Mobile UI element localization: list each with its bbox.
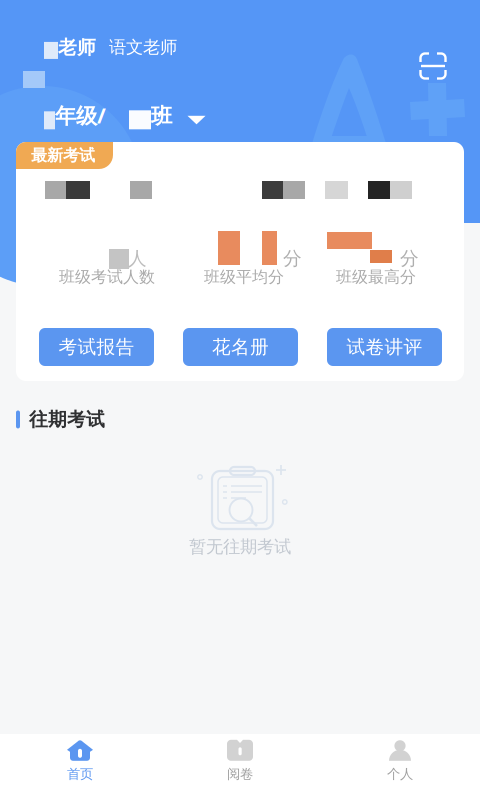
button[interactable]: 阅卷 [160,734,320,800]
button[interactable]: 年级/ [44,96,206,134]
staticText: 往期考试 [29,408,105,431]
staticText: 试卷讲评 [346,335,422,358]
staticText: 花名册 [212,335,269,358]
staticText: 班级考试人数 [59,267,155,287]
staticText: 暂无往期考试 [189,536,291,557]
button[interactable]: 试卷讲评 [327,328,442,366]
staticText: 人 [128,247,147,270]
button[interactable]: 首页 [0,734,160,800]
staticText: 语文老师 [109,37,177,58]
staticText: 个人 [387,766,413,782]
staticText: 首页 [67,766,93,782]
button[interactable]: 考试报告 [39,328,154,366]
button[interactable]: 花名册 [183,328,298,366]
staticText: 分 [283,247,302,270]
staticText: 分 [400,247,419,270]
staticText: 阅卷 [227,766,253,782]
staticText: 班级最高分 [336,267,416,287]
staticText: 老师 [58,36,96,59]
staticText: 考试报告 [58,335,134,358]
button[interactable]: 扫一扫 [411,44,455,88]
staticText: 年级/ [55,101,106,129]
staticText: 班 [151,103,172,129]
staticText: 最新考试 [31,146,95,165]
staticText: 班级平均分 [204,267,284,287]
button[interactable]: 个人 [320,734,480,800]
